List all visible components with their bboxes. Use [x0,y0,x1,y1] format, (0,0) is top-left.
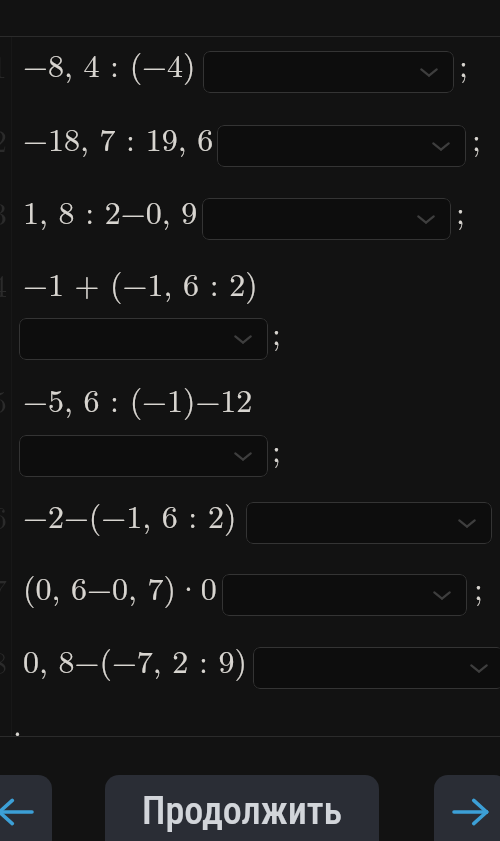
button[interactable]: Назад [0,775,52,841]
button[interactable]: Вперёд [434,775,500,841]
button[interactable] [202,198,451,240]
staticText: ; [472,115,481,160]
staticText: ; [272,426,281,471]
button[interactable] [246,502,492,544]
staticText: 4 [0,261,8,306]
staticText: 6 [0,493,8,538]
staticText: 7 [0,565,8,610]
button[interactable] [19,435,268,477]
staticText: (0, 6−0, 7)·0 [23,564,217,609]
button[interactable]: Продолжить [105,775,379,841]
button[interactable] [217,125,466,167]
staticText: 1, 8 : 2−0, 9 [23,188,198,233]
staticText: −2−(−1, 6 : 2) [23,492,237,537]
staticText: ; [456,188,465,233]
staticText: −1 + (−1, 6 : 2) [23,260,258,305]
staticText: ; [459,41,468,86]
staticText: 3 [0,189,8,234]
staticText: . [13,700,22,745]
button[interactable] [253,647,500,689]
button[interactable] [19,318,268,360]
staticText: −5, 6 : (−1)−12 [23,376,253,421]
staticText: Продолжить [142,789,343,834]
staticText: 5 [0,377,8,422]
staticText: ; [474,564,483,609]
staticText: −18, 7 : 19, 6 [23,115,214,160]
button[interactable] [203,51,454,93]
staticText: 8 [0,638,8,683]
staticText: ; [272,309,281,354]
staticText: 0, 8−(−7, 2 : 9) [23,637,248,682]
button[interactable] [222,574,467,616]
staticText: 2 [0,116,8,161]
staticText: −8, 4 : (−4) [23,41,196,86]
